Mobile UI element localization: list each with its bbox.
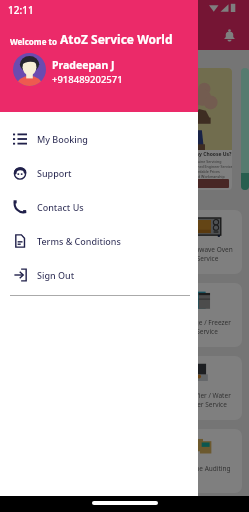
button[interactable]	[241, 68, 249, 190]
staticText: Welcome to	[10, 36, 60, 47]
staticText: Home Auditing	[184, 464, 231, 473]
button[interactable]: AC Service	[7, 210, 78, 274]
button[interactable]: Sign Out	[0, 258, 198, 292]
button[interactable]: Microwave Oven Service	[172, 210, 242, 274]
button[interactable]: My Booking	[0, 122, 198, 156]
staticText: 12:11	[8, 3, 34, 17]
staticText: Genuine Servicing Trained Engineer Servi…	[191, 159, 232, 179]
staticText: Terms & Conditions	[37, 235, 121, 247]
button[interactable]: Notifications	[218, 24, 240, 46]
button[interactable]: Chimney Service	[90, 283, 160, 347]
button[interactable]: Washing Machine Service	[90, 210, 160, 274]
staticText: 12:11	[8, 3, 34, 17]
staticText: Support	[37, 167, 72, 179]
staticText: Sign Out	[37, 269, 75, 281]
button[interactable]: Fridge / Freezer Service	[172, 283, 242, 347]
staticText: Purifier / Water Filter Service	[184, 391, 231, 409]
button[interactable]: Home Auditing	[172, 429, 242, 493]
staticText: Pradeepan J	[52, 58, 115, 72]
staticText: Why Choose Us?	[191, 151, 232, 158]
staticText: Contact Us	[37, 201, 84, 213]
staticText: Microwave Oven Service	[182, 245, 233, 263]
button[interactable]: Support	[0, 156, 198, 190]
button[interactable]: Purifier / Water Filter Service	[172, 356, 242, 420]
button[interactable]: Why Choose Us?	[7, 68, 232, 190]
staticText: AtoZ Service World	[60, 31, 173, 47]
button[interactable]: TV Service	[7, 283, 78, 347]
button[interactable]: Terms & Conditions	[0, 224, 198, 258]
button[interactable]: Contact Us	[0, 190, 198, 224]
staticText: +918489202571	[52, 73, 123, 86]
staticText: Fridge / Freezer Service	[183, 318, 231, 336]
staticText: My Booking	[37, 133, 88, 145]
